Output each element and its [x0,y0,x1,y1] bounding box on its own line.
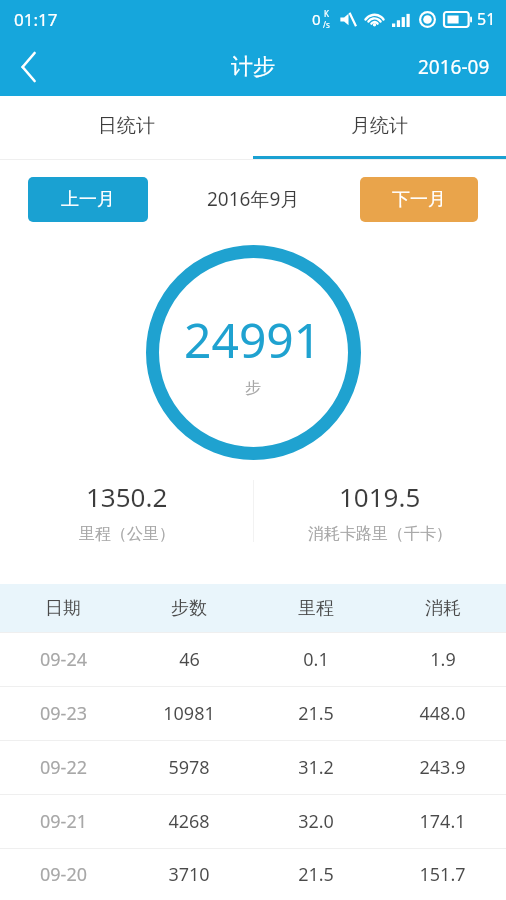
staticText: 01:17 [14,8,58,31]
staticText: 里程 [298,597,334,620]
staticText: 151.7 [419,862,466,887]
button[interactable]: 09-24 [0,633,506,686]
staticText: 日统计 [98,114,155,138]
staticText: 4268 [168,809,210,834]
button[interactable]: 日统计 [0,96,253,156]
staticText: 1.9 [430,647,456,672]
staticText: 21.5 [298,701,334,726]
staticText: 0 [312,9,321,29]
staticText: 09-24 [40,647,87,672]
staticText: 1019.5 [339,479,421,514]
staticText: 51 [477,8,496,30]
staticText: 09-23 [40,701,87,726]
button[interactable]: 09-22 [0,741,506,794]
button[interactable]: Back [0,38,58,96]
staticText: 09-21 [40,809,87,834]
staticText: /s [323,19,330,30]
staticText: 5978 [168,755,210,780]
staticText: 46 [179,647,200,672]
staticText: 21.5 [298,862,334,887]
button[interactable]: 09-23 [0,687,506,740]
staticText: 步数 [171,597,207,620]
staticText: K [324,8,329,19]
staticText: 3710 [168,862,210,887]
staticText: 174.1 [419,809,466,834]
button[interactable]: 下一月 [360,177,478,222]
staticText: 里程（公里） [79,524,175,544]
staticText: 上一月 [61,188,115,211]
staticText: 日期 [45,597,81,620]
button[interactable]: 09-21 [0,795,506,848]
staticText: 09-22 [40,755,87,780]
staticText: 计步 [231,53,275,81]
staticText: 消耗卡路里（千卡） [308,524,452,544]
staticText: 0.1 [303,647,329,672]
button[interactable]: 上一月 [28,177,148,222]
staticText: 月统计 [351,114,408,138]
staticText: 步 [245,378,261,398]
staticText: 消耗 [425,597,461,620]
staticText: 32.0 [298,809,334,834]
button[interactable]: 月统计 [253,96,506,156]
staticText: 下一月 [392,188,446,211]
staticText: 31.2 [298,755,334,780]
staticText: 10981 [163,701,215,726]
staticText: 2016年9月 [207,186,300,212]
staticText: 1350.2 [86,479,168,514]
button[interactable]: 2016-09 [418,54,506,80]
staticText: 243.9 [419,755,466,780]
staticText: 09-20 [40,862,87,887]
button[interactable]: 09-20 [0,849,506,900]
staticText: 24991 [184,307,322,372]
staticText: 448.0 [419,701,466,726]
